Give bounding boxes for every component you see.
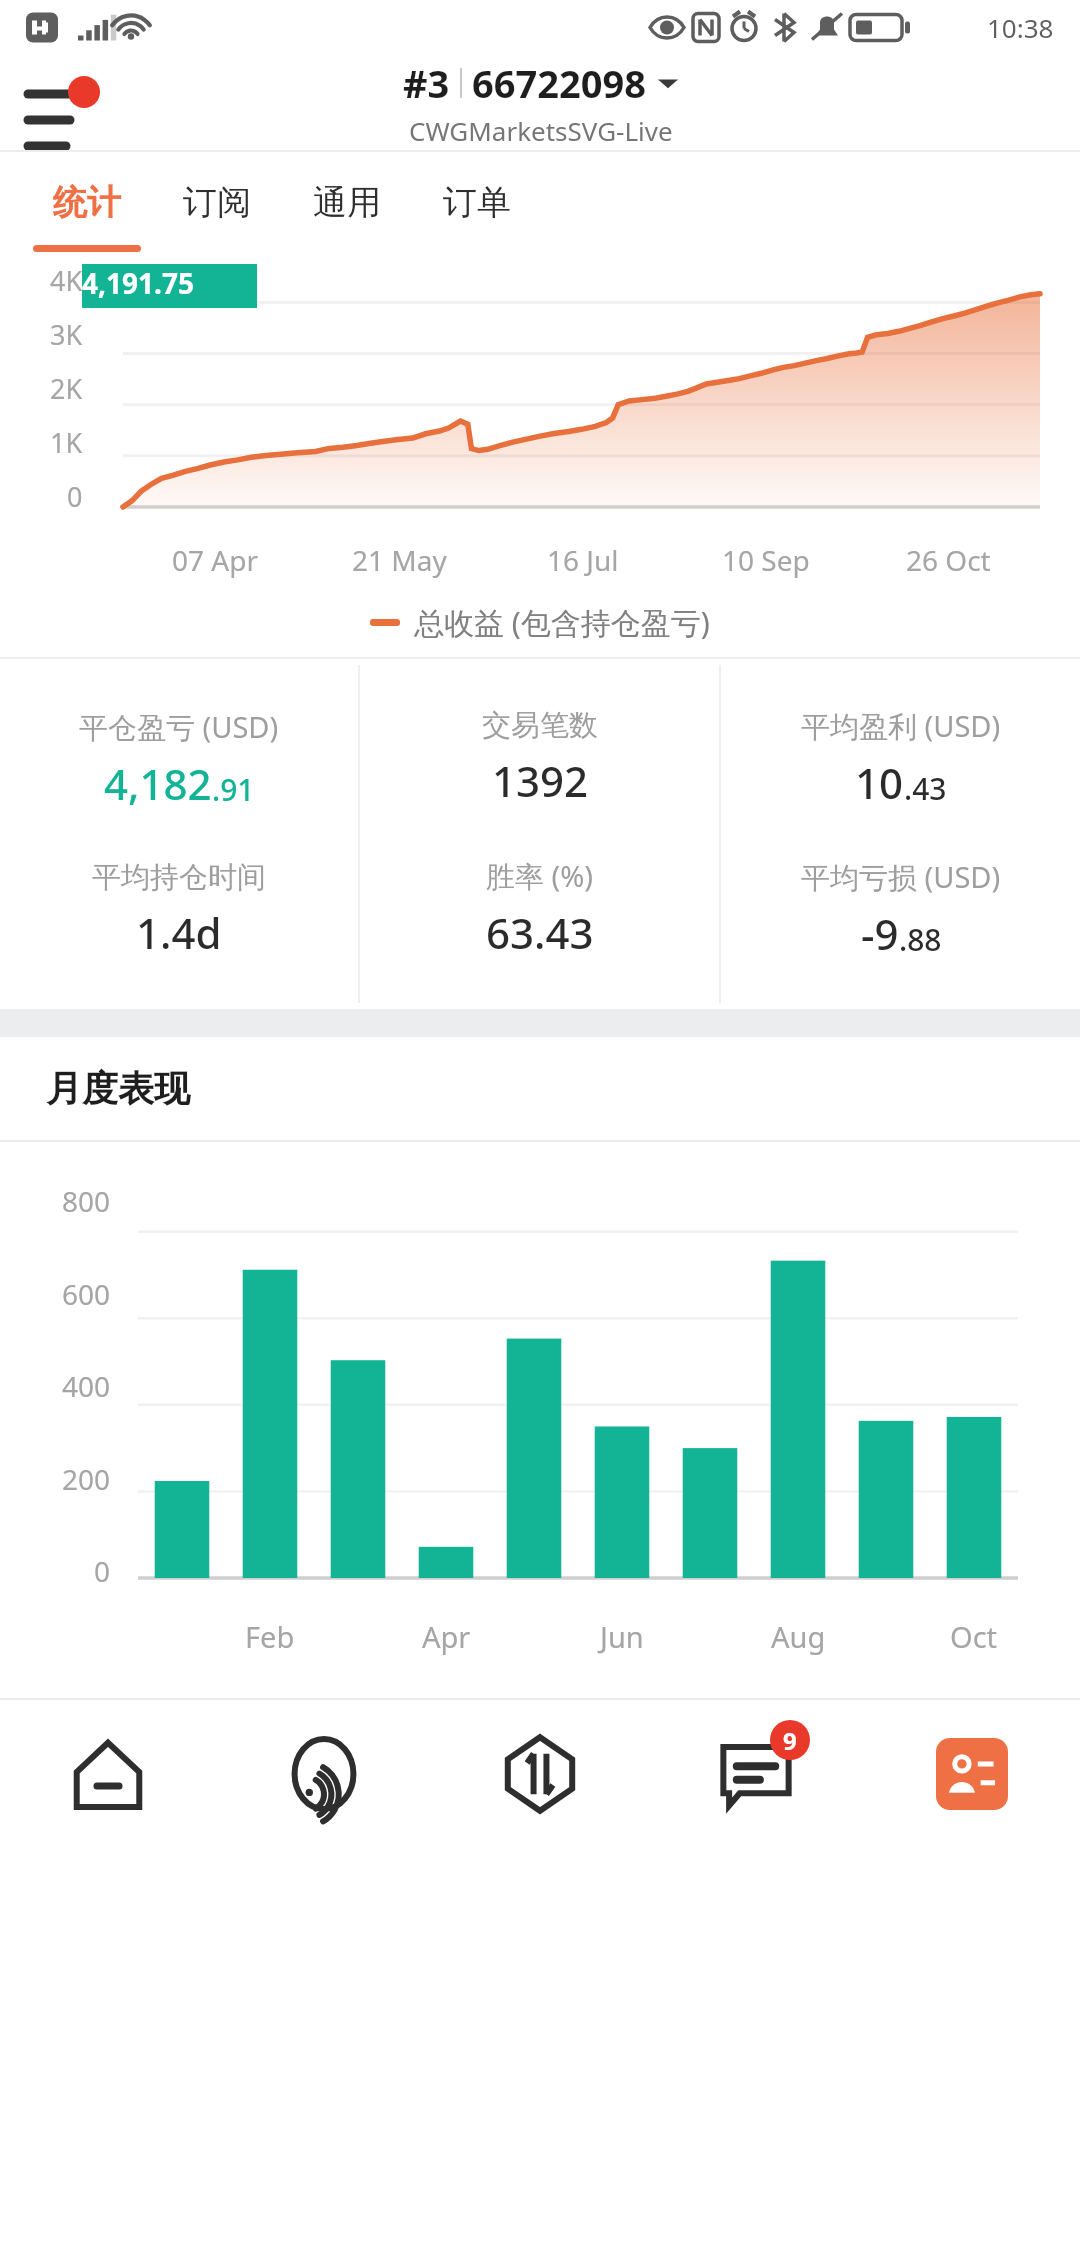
staticText: 10:38 <box>987 10 1054 45</box>
staticText: 26 Oct <box>906 541 991 579</box>
staticText: 66722098 <box>472 57 646 109</box>
button[interactable]: 订单 <box>412 152 542 252</box>
staticText: 10 <box>855 754 904 811</box>
staticText: 平均持仓时间 <box>92 859 266 896</box>
staticText: 07 Apr <box>172 541 258 579</box>
staticText: 400 <box>62 1367 111 1405</box>
staticText: 4,182 <box>104 755 212 812</box>
staticText: -9 <box>861 905 899 962</box>
button[interactable]: 订阅 <box>152 152 282 252</box>
staticText: 平均盈利 (USD) <box>801 706 1001 746</box>
staticText: 4,191.75 USD <box>82 264 257 308</box>
staticText: 总收益 (包含持仓盈亏) <box>414 602 710 643</box>
staticText: 1K <box>50 424 83 461</box>
staticText: 1.4d <box>136 904 222 961</box>
staticText: Jun <box>600 1617 644 1656</box>
staticText: 16 Jul <box>547 541 619 579</box>
staticText: 10 Sep <box>722 541 810 579</box>
staticText: Feb <box>245 1617 295 1656</box>
staticText: 800 <box>62 1182 111 1220</box>
staticText: 1392 <box>492 752 589 809</box>
staticText: 0 <box>94 1552 111 1590</box>
staticText: CWGMarketsSVG-Live <box>409 113 673 148</box>
staticText: Aug <box>771 1617 826 1656</box>
staticText: 63.43 <box>486 904 594 961</box>
button[interactable]: Menu <box>22 72 84 134</box>
staticText: Apr <box>422 1617 471 1656</box>
button[interactable]: Signals <box>216 1700 432 1847</box>
button[interactable]: Chat <box>708 1726 804 1822</box>
staticText: 3K <box>50 316 83 353</box>
staticText: 平均亏损 (USD) <box>801 857 1001 897</box>
button[interactable]: Profile <box>936 1738 1008 1810</box>
button[interactable]: Home <box>0 1700 216 1847</box>
staticText: 统计 <box>53 181 121 224</box>
staticText: 订阅 <box>183 181 251 224</box>
staticText: 4K <box>50 262 83 299</box>
staticText: 600 <box>62 1275 111 1313</box>
staticText: .91 <box>212 769 255 810</box>
staticText: 胜率 (%) <box>486 856 594 896</box>
staticText: .88 <box>899 919 942 960</box>
button[interactable]: 通用 <box>282 152 412 252</box>
staticText: 2K <box>50 370 83 407</box>
staticText: 200 <box>62 1460 111 1498</box>
staticText: #3 <box>403 57 450 109</box>
staticText: 9 <box>783 1724 797 1757</box>
staticText: 0 <box>67 478 83 515</box>
staticText: .43 <box>904 768 947 809</box>
staticText: 平仓盈亏 (USD) <box>79 707 279 747</box>
staticText: Oct <box>950 1617 998 1656</box>
staticText: 通用 <box>313 181 381 224</box>
staticText: 交易笔数 <box>482 707 598 744</box>
button[interactable]: Trade <box>432 1700 648 1847</box>
staticText: 21 May <box>352 541 447 579</box>
button[interactable]: 统计 <box>22 152 152 252</box>
staticText: 订单 <box>443 181 511 224</box>
staticText: 月度表现 <box>46 1066 190 1111</box>
